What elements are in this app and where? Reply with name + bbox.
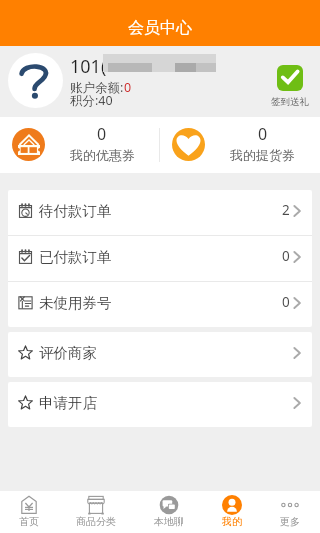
staticText: 积分:40: [70, 92, 113, 109]
button[interactable]: 0: [160, 117, 320, 173]
staticText: 签到送礼: [271, 96, 309, 108]
staticText: 首页: [19, 515, 39, 528]
button[interactable]: 更多: [260, 491, 320, 533]
staticText: 评价商家: [39, 344, 97, 362]
staticText: 2: [282, 201, 290, 219]
button[interactable]: 商品分类: [58, 491, 134, 533]
button[interactable]: 待付款订单: [8, 190, 312, 235]
staticText: 0: [282, 293, 290, 311]
button[interactable]: 本地聊: [134, 491, 203, 533]
staticText: 账户余额:: [70, 79, 124, 96]
staticText: 我的提货券: [230, 147, 295, 163]
staticText: 101(: [70, 54, 107, 79]
staticText: 0: [258, 123, 268, 145]
button[interactable]: 我的: [203, 491, 260, 533]
button[interactable]: 评价商家: [8, 332, 312, 377]
button[interactable]: 签到送礼: [265, 65, 315, 108]
staticText: 待付款订单: [39, 202, 112, 220]
button[interactable]: 0: [0, 117, 159, 173]
staticText: 更多: [280, 515, 300, 528]
button[interactable]: 已付款订单: [8, 236, 312, 281]
staticText: 0: [282, 247, 290, 265]
staticText: 我的优惠券: [70, 147, 135, 163]
button[interactable]: 首页: [0, 491, 58, 533]
button[interactable]: 头像: [8, 53, 63, 108]
staticText: 商品分类: [76, 515, 116, 528]
staticText: 申请开店: [39, 394, 97, 412]
staticText: 我的: [222, 515, 242, 528]
staticText: 已付款订单: [39, 248, 112, 266]
staticText: 0: [97, 123, 107, 145]
button[interactable]: 未使用券号: [8, 282, 312, 327]
button[interactable]: 申请开店: [8, 382, 312, 427]
staticText: 0: [124, 79, 132, 96]
staticText: 未使用券号: [39, 294, 112, 312]
staticText: 会员中心: [128, 18, 192, 38]
staticText: 本地聊: [154, 515, 184, 528]
